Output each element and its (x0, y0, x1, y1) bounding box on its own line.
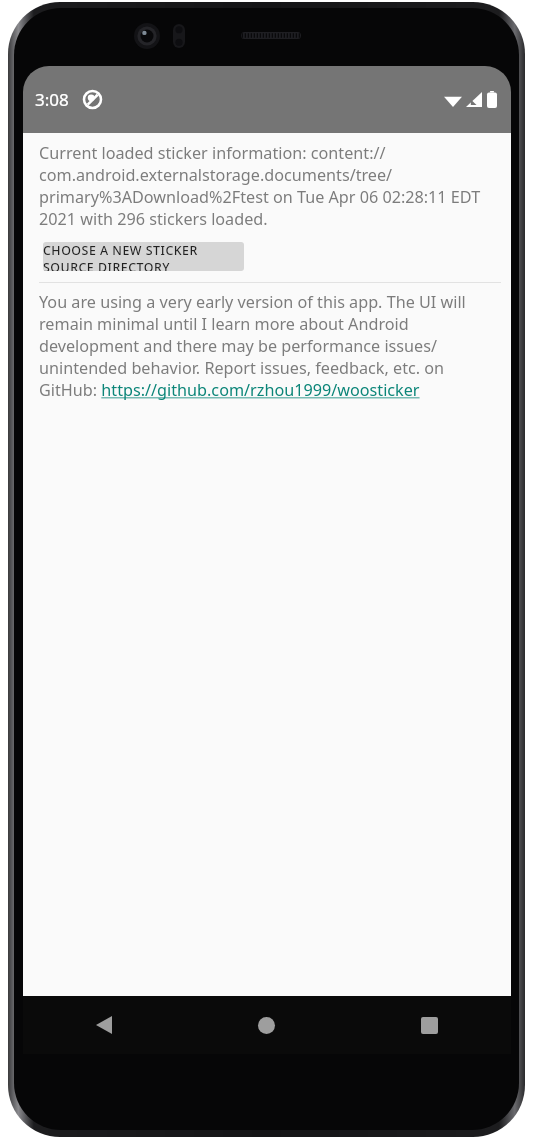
staticText: Current loaded sticker information: cont… (39, 142, 499, 230)
staticText: 3:08 (35, 88, 69, 111)
button[interactable]: You are using a very early version of th… (39, 291, 499, 401)
button[interactable]: Home (185, 996, 348, 1054)
button[interactable]: Back (23, 996, 185, 1054)
staticText: CHOOSE A NEW STICKER SOURCE DIRECTORY (43, 242, 244, 271)
button[interactable]: Recent apps (348, 996, 511, 1054)
button[interactable]: CHOOSE A NEW STICKER SOURCE DIRECTORY (43, 242, 244, 271)
